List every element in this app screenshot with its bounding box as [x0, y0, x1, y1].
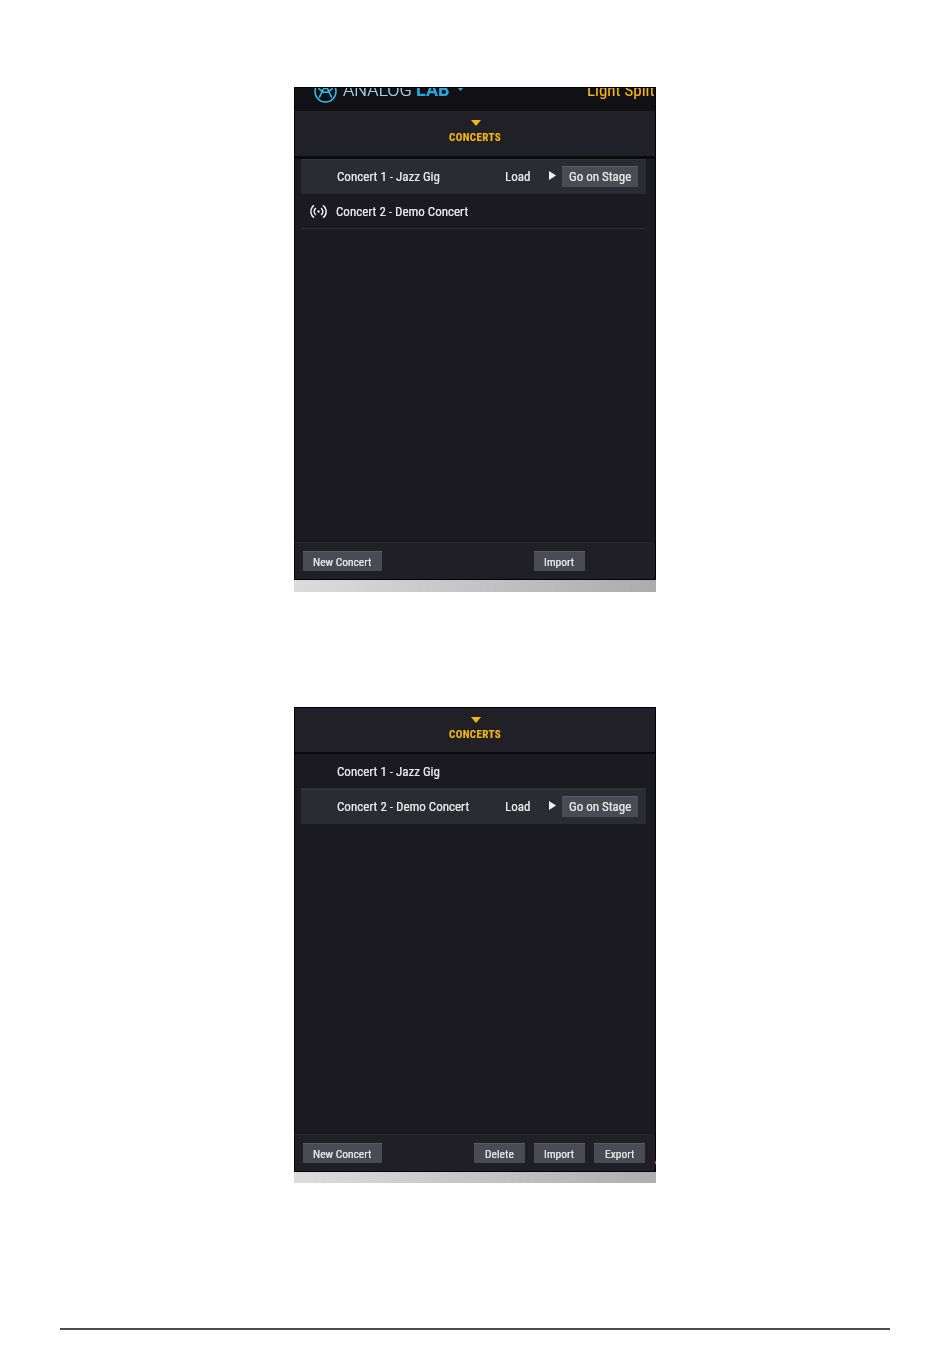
button[interactable]: Import — [534, 551, 585, 571]
staticText: ANALOG — [343, 88, 412, 100]
button[interactable]: Concert 1 - Jazz Gig — [295, 159, 655, 193]
button[interactable]: Play — [549, 171, 556, 180]
staticText: CONCERTS — [449, 728, 502, 741]
button[interactable]: Load — [505, 799, 531, 814]
staticText: CONCERTS — [449, 131, 502, 144]
staticText: Go on Stage — [569, 169, 632, 184]
staticText: New Concert — [313, 1147, 372, 1160]
button[interactable]: Go on Stage — [562, 166, 638, 187]
staticText: Concert 1 - Jazz Gig — [337, 764, 440, 779]
button[interactable]: Play — [549, 801, 556, 810]
staticText: Export — [605, 1147, 635, 1160]
staticText: Delete — [485, 1147, 514, 1160]
button[interactable]: Concert 2 - Demo Concert — [295, 789, 655, 823]
staticText: Concert 1 - Jazz Gig — [337, 169, 440, 184]
staticText: Import — [544, 1147, 575, 1160]
staticText: Light Split — [587, 88, 655, 100]
staticText: Concert 2 - Demo Concert — [336, 204, 469, 219]
button[interactable]: Export — [594, 1143, 645, 1163]
button[interactable]: Delete — [474, 1143, 525, 1163]
button[interactable]: CONCERTS — [295, 111, 655, 156]
button[interactable]: Concert 2 - Demo Concert — [295, 194, 655, 228]
button[interactable]: Import — [534, 1143, 585, 1163]
staticText: Concert 2 - Demo Concert — [337, 799, 470, 814]
button[interactable]: CONCERTS — [295, 708, 655, 752]
staticText: LAB — [416, 88, 450, 100]
button[interactable]: Concert 1 - Jazz Gig — [295, 754, 655, 788]
button[interactable]: Go on Stage — [562, 796, 638, 817]
staticText: Go on Stage — [569, 799, 632, 814]
staticText: Import — [544, 555, 575, 568]
button[interactable]: New Concert — [303, 551, 382, 571]
button[interactable]: New Concert — [303, 1143, 382, 1163]
button[interactable]: Load — [505, 169, 531, 184]
staticText: New Concert — [313, 555, 372, 568]
